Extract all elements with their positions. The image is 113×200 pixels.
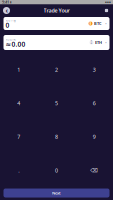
staticText: 0 [55,167,58,174]
button[interactable]: Ξ [89,40,107,45]
staticText: ETH [95,40,102,45]
staticText: ≈0.00 [5,40,25,49]
staticText: . [18,167,19,174]
staticText: 5 [55,100,58,107]
button[interactable]: 6 [75,86,113,120]
staticText: 3 [93,66,96,73]
button[interactable]: 4 [0,86,38,120]
staticText: Ξ [90,41,92,44]
button[interactable]: 7 [0,120,38,154]
button[interactable]: 8 [38,120,75,154]
button[interactable]: Back [0,4,13,17]
staticText: 9:41 [2,0,9,5]
staticText: 0 [5,21,9,30]
staticText: ▾ [105,22,106,25]
staticText: ₿ [89,22,91,25]
staticText: 6 [93,100,96,107]
button[interactable]: ⌫ [75,154,113,187]
staticText: ▾ [105,41,106,44]
button[interactable]: 1 [0,53,38,86]
button[interactable]: ₿ [88,21,107,26]
staticText: ▮ [10,0,11,3]
button[interactable]: 9 [75,120,113,154]
staticText: 2 [55,66,58,73]
staticText: BTC [94,21,102,26]
staticText: 9 [93,133,96,140]
button[interactable]: Next [3,188,109,197]
staticText: Receive [5,38,16,41]
button[interactable]: 3 [75,53,113,86]
staticText: Next [52,190,61,196]
staticText: You Pay [5,19,15,22]
button[interactable]: Options [100,4,113,17]
staticText: 4 [17,100,20,107]
staticText: 1 [17,66,20,73]
staticText: ⌫ [90,167,98,173]
staticText: 8 [55,133,58,140]
staticText: ‹ [5,6,7,15]
staticText: Trade Your [43,7,69,14]
button[interactable]: 0 [38,154,75,187]
staticText: 7 [17,133,20,140]
staticText: ▪▪▪ [105,0,111,3]
button[interactable]: 2 [38,53,75,86]
button[interactable]: 5 [38,86,75,120]
